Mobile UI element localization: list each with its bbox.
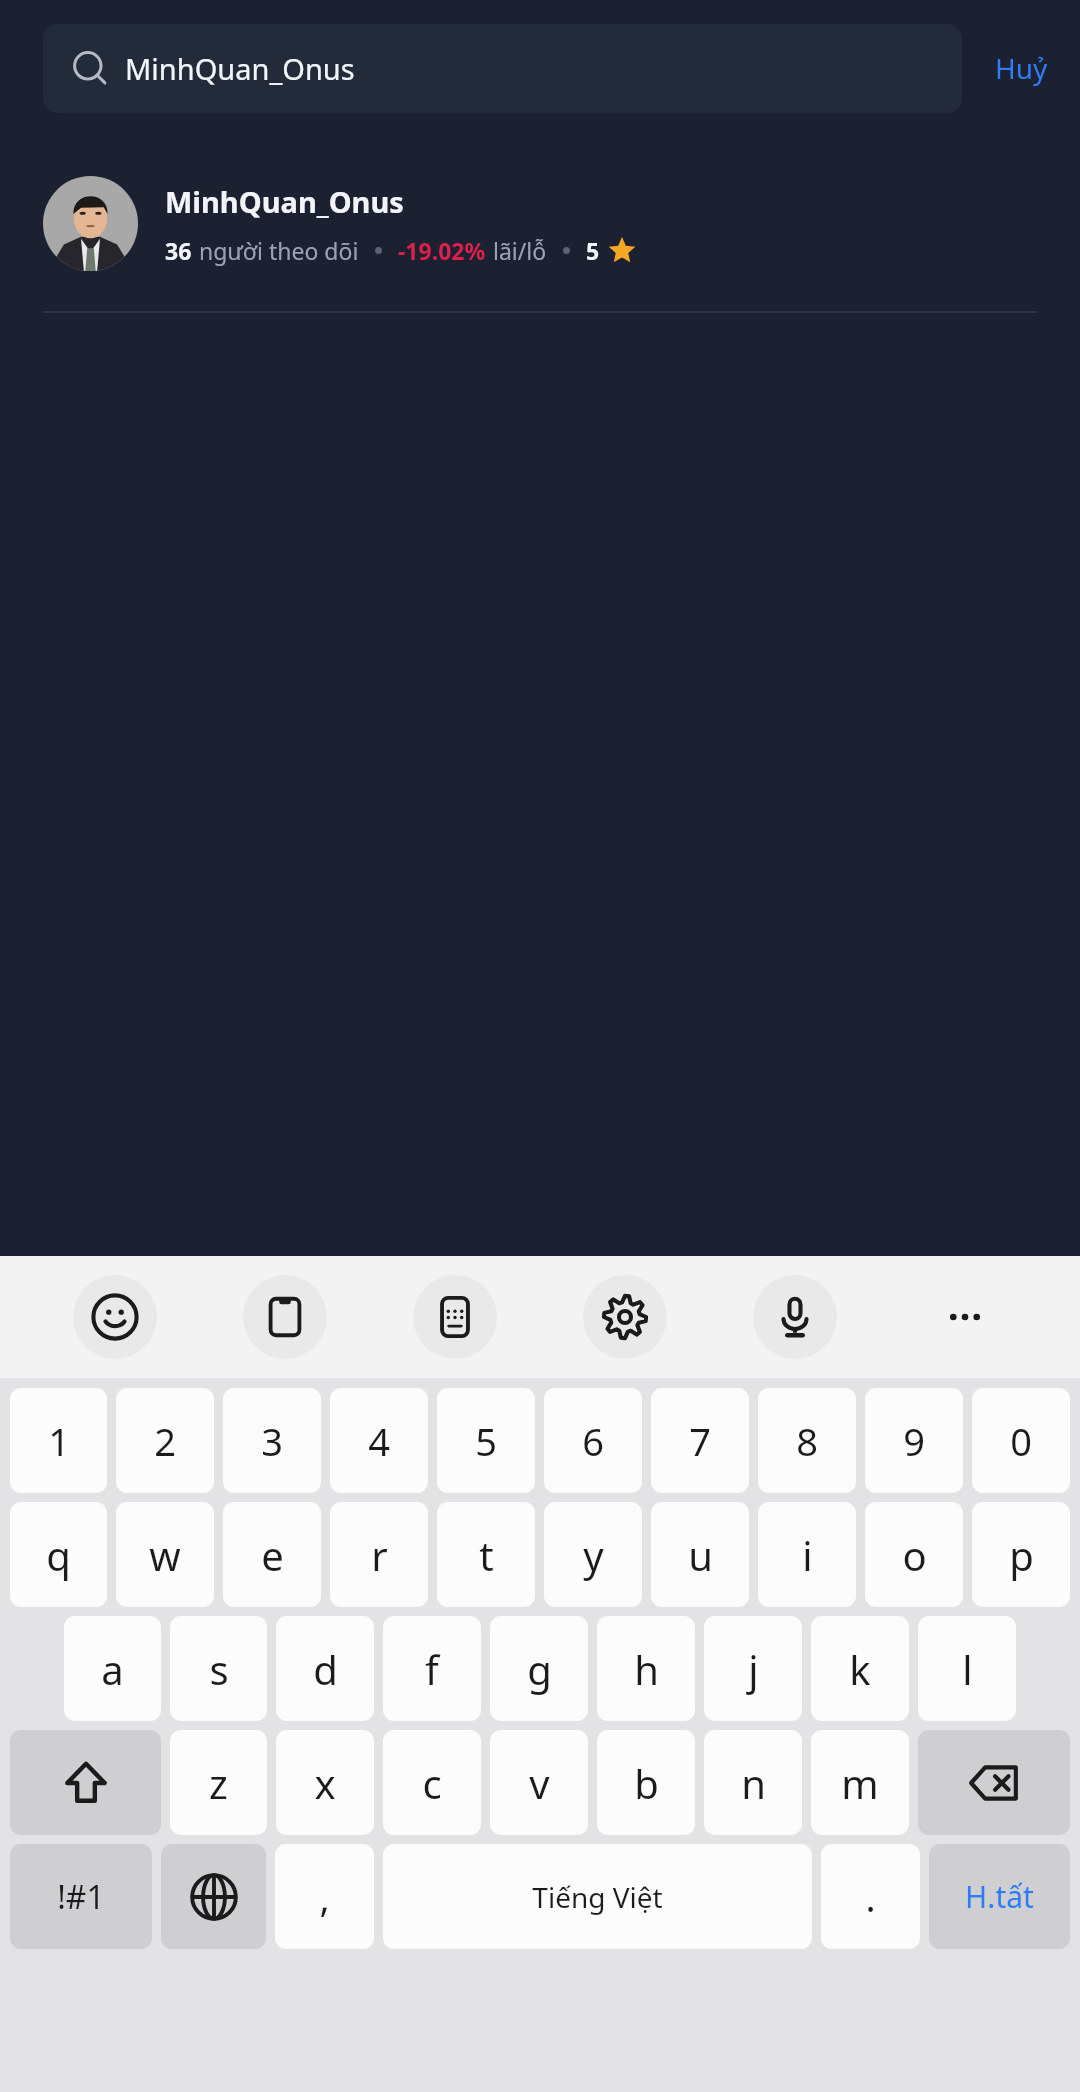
staticText: z	[209, 1756, 228, 1810]
button[interactable]: i	[758, 1502, 856, 1607]
staticText: y	[583, 1528, 604, 1582]
button[interactable]: 3	[223, 1388, 321, 1493]
button[interactable]: H.tất	[929, 1844, 1070, 1949]
button[interactable]: 4	[330, 1388, 428, 1493]
button[interactable]: a	[64, 1616, 161, 1721]
staticText: u	[688, 1528, 713, 1582]
button[interactable]: Backspace	[918, 1730, 1070, 1835]
button[interactable]: 8	[758, 1388, 856, 1493]
staticText: -19.02%	[398, 235, 486, 266]
staticText: j	[748, 1642, 759, 1696]
staticText: 6	[582, 1415, 604, 1467]
staticText: 4	[368, 1415, 390, 1467]
button[interactable]: Settings	[540, 1256, 710, 1378]
staticText: 3	[261, 1415, 283, 1467]
staticText: a	[101, 1642, 124, 1696]
button[interactable]: 7	[651, 1388, 749, 1493]
staticText: q	[46, 1528, 71, 1582]
button[interactable]: More options	[880, 1256, 1050, 1378]
staticText: g	[527, 1642, 552, 1696]
button[interactable]: Emoji	[30, 1256, 200, 1378]
staticText: MinhQuan_Onus	[125, 49, 355, 88]
staticText: b	[634, 1756, 659, 1810]
button[interactable]: Tiếng Việt	[383, 1844, 812, 1949]
staticText: d	[313, 1642, 338, 1696]
staticText: ,	[319, 1871, 330, 1923]
staticText: Tiếng Việt	[532, 1878, 663, 1916]
button[interactable]: w	[116, 1502, 214, 1607]
button[interactable]: k	[811, 1616, 909, 1721]
staticText: 8	[796, 1415, 818, 1467]
button[interactable]: c	[383, 1730, 481, 1835]
button[interactable]: y	[544, 1502, 642, 1607]
button[interactable]: .	[821, 1844, 920, 1949]
button[interactable]: f	[383, 1616, 481, 1721]
button[interactable]: j	[704, 1616, 802, 1721]
button[interactable]: Huỷ	[962, 0, 1080, 136]
staticText: 5	[475, 1415, 497, 1467]
button[interactable]: 2	[116, 1388, 214, 1493]
button[interactable]: 1	[10, 1388, 107, 1493]
button[interactable]: d	[276, 1616, 374, 1721]
staticText: MinhQuan_Onus	[165, 182, 404, 221]
staticText: o	[902, 1528, 927, 1582]
staticText: w	[149, 1528, 181, 1582]
staticText: .	[865, 1871, 876, 1923]
button[interactable]: Keyboard layout	[370, 1256, 540, 1378]
staticText: 9	[903, 1415, 925, 1467]
staticText: v	[529, 1756, 550, 1810]
staticText: 0	[1010, 1415, 1032, 1467]
staticText: 1	[48, 1415, 70, 1467]
staticText: m	[841, 1756, 879, 1810]
button[interactable]: q	[10, 1502, 107, 1607]
staticText: i	[802, 1528, 813, 1582]
button[interactable]: l	[918, 1616, 1016, 1721]
button[interactable]: v	[490, 1730, 588, 1835]
button[interactable]: MinhQuan_Onus	[43, 24, 962, 113]
button[interactable]: g	[490, 1616, 588, 1721]
button[interactable]: p	[972, 1502, 1070, 1607]
button[interactable]: 0	[972, 1388, 1070, 1493]
staticText: f	[425, 1642, 439, 1696]
staticText: e	[261, 1528, 284, 1582]
staticText: !#1	[57, 1875, 105, 1919]
staticText: l	[962, 1642, 973, 1696]
button[interactable]: o	[865, 1502, 963, 1607]
button[interactable]: x	[276, 1730, 374, 1835]
button[interactable]: h	[597, 1616, 695, 1721]
button[interactable]: r	[330, 1502, 428, 1607]
button[interactable]: Shift	[10, 1730, 161, 1835]
button[interactable]: 6	[544, 1388, 642, 1493]
staticText: s	[209, 1642, 229, 1696]
staticText: k	[849, 1642, 871, 1696]
staticText: c	[422, 1756, 442, 1810]
button[interactable]: z	[170, 1730, 267, 1835]
staticText: 2	[154, 1415, 176, 1467]
button[interactable]: n	[704, 1730, 802, 1835]
button[interactable]: b	[597, 1730, 695, 1835]
button[interactable]: Voice input	[710, 1256, 880, 1378]
staticText: 7	[689, 1415, 711, 1467]
staticText: n	[741, 1756, 766, 1810]
staticText: 5	[586, 235, 600, 266]
staticText: lãi/lỗ	[493, 235, 547, 266]
button[interactable]: 5	[437, 1388, 535, 1493]
button[interactable]: u	[651, 1502, 749, 1607]
staticText: t	[479, 1528, 494, 1582]
staticText: r	[371, 1528, 388, 1582]
button[interactable]: ,	[275, 1844, 374, 1949]
button[interactable]: e	[223, 1502, 321, 1607]
staticText: người theo dõi	[199, 235, 359, 266]
staticText: Huỷ	[995, 49, 1048, 87]
button[interactable]: Change language	[161, 1844, 266, 1949]
button[interactable]: !#1	[10, 1844, 152, 1949]
staticText: p	[1009, 1528, 1034, 1582]
staticText: H.tất	[965, 1876, 1034, 1917]
button[interactable]: Clipboard	[200, 1256, 370, 1378]
button[interactable]: s	[170, 1616, 267, 1721]
staticText: 36	[165, 235, 192, 266]
button[interactable]: MinhQuan_Onus	[0, 136, 1080, 311]
button[interactable]: m	[811, 1730, 909, 1835]
button[interactable]: 9	[865, 1388, 963, 1493]
button[interactable]: t	[437, 1502, 535, 1607]
